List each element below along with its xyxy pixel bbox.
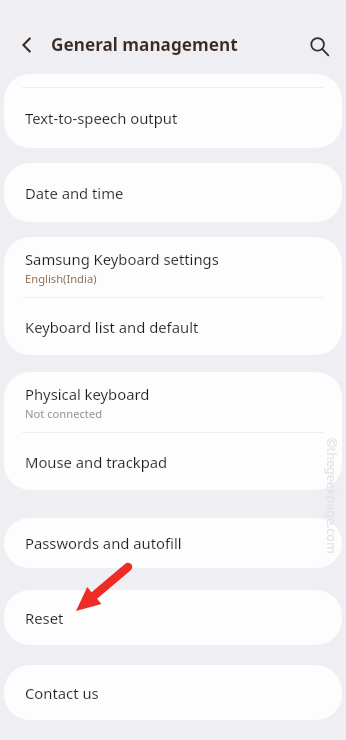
staticText: English(India) — [25, 271, 97, 286]
staticText: General management — [51, 33, 238, 56]
staticText: Date and time — [25, 183, 124, 203]
staticText: Keyboard list and default — [25, 317, 199, 337]
button[interactable]: Reset — [4, 590, 342, 645]
button[interactable]: Search — [299, 26, 339, 66]
button[interactable]: Passwords and autofill — [4, 518, 342, 568]
button[interactable]: Keyboard list and default — [4, 298, 342, 355]
staticText: Not connected — [25, 406, 103, 421]
staticText: Physical keyboard — [25, 384, 150, 404]
button[interactable]: Text-to-speech output — [4, 88, 342, 148]
button[interactable]: Samsung Keyboard settings — [4, 237, 342, 297]
staticText: Mouse and trackpad — [25, 452, 168, 472]
staticText: Contact us — [25, 683, 99, 703]
button[interactable]: Date and time — [4, 163, 342, 222]
staticText: Reset — [25, 608, 64, 628]
button[interactable]: Navigate up — [8, 26, 46, 64]
staticText: Text-to-speech output — [25, 108, 178, 128]
button[interactable]: Physical keyboard — [4, 372, 342, 432]
button[interactable]: Contact us — [4, 665, 342, 720]
staticText: ©thegeekpage.com — [323, 437, 340, 554]
staticText: Samsung Keyboard settings — [25, 249, 219, 269]
staticText: Passwords and autofill — [25, 533, 182, 553]
button[interactable]: Mouse and trackpad — [4, 433, 342, 490]
